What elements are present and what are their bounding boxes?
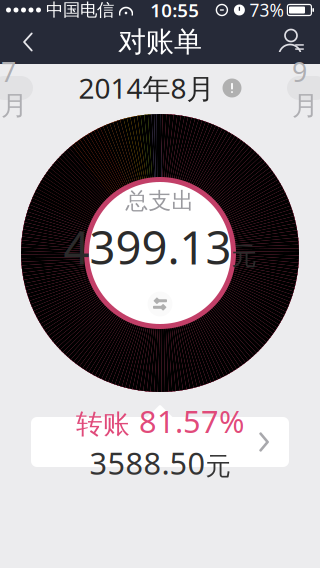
staticText: 3588.50 bbox=[89, 442, 205, 483]
button[interactable]: 7月 bbox=[0, 76, 41, 100]
button[interactable]: 转账 bbox=[31, 417, 289, 467]
staticText: 4399.13 bbox=[63, 217, 231, 277]
staticText: 转账 bbox=[76, 408, 130, 441]
button[interactable]: 2014年8月 bbox=[68, 71, 251, 105]
staticText: 中国电信 bbox=[46, 0, 114, 21]
staticText: 总支出 bbox=[125, 187, 194, 215]
staticText: 2014年8月 bbox=[78, 69, 214, 107]
button[interactable]: 返回 bbox=[6, 20, 50, 64]
staticText: 元 bbox=[231, 240, 256, 272]
staticText: 对账单 bbox=[118, 25, 202, 59]
staticText: 9月 bbox=[292, 54, 319, 122]
staticText: 73% bbox=[249, 0, 283, 21]
button[interactable]: 联系人 bbox=[270, 20, 314, 64]
staticText: 81.57% bbox=[139, 401, 244, 441]
button[interactable]: 切换支出与收入 bbox=[145, 289, 175, 319]
staticText: 元 bbox=[205, 451, 230, 482]
staticText: 7月 bbox=[1, 54, 28, 122]
button[interactable]: 9月 bbox=[279, 76, 320, 100]
staticText: 10:55 bbox=[150, 0, 199, 22]
